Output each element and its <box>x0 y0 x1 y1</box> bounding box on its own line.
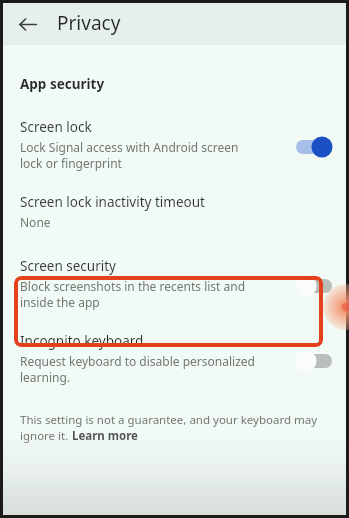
button[interactable]: Learn more <box>72 428 138 444</box>
staticText: Request keyboard to disable personalized <box>20 353 255 369</box>
button[interactable]: Incognito keyboard <box>294 348 334 374</box>
staticText: Screen lock inactivity timeout <box>20 193 205 211</box>
staticText: inside the app <box>20 294 100 310</box>
button[interactable]: Screen lock <box>3 118 346 171</box>
button[interactable]: Screen security <box>294 273 334 299</box>
staticText: learning. <box>20 369 71 385</box>
button[interactable]: Back <box>9 6 45 42</box>
staticText: Incognito keyboard <box>20 332 144 350</box>
button[interactable]: Incognito keyboard <box>3 332 346 385</box>
button[interactable]: Screen lock inactivity timeout <box>3 193 346 230</box>
staticText: None <box>20 214 51 230</box>
staticText: lock or fingerprint <box>20 155 122 171</box>
staticText: Learn more <box>72 428 138 444</box>
button[interactable]: Screen lock <box>294 134 334 160</box>
button[interactable]: Screen security <box>3 257 346 310</box>
staticText: Lock Signal access with Android screen <box>20 139 239 155</box>
staticText: Screen lock <box>20 118 92 136</box>
staticText: ignore it. <box>20 428 72 444</box>
staticText: Block screenshots in the recents list an… <box>20 278 246 294</box>
staticText: This setting is not a guarantee, and you… <box>20 412 318 428</box>
staticText: Screen security <box>20 257 116 275</box>
staticText: Privacy <box>57 10 121 36</box>
staticText: App security <box>20 75 105 93</box>
